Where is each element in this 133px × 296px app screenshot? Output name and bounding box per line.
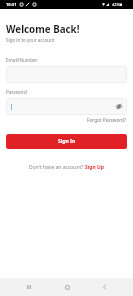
staticText: Sign in to your account <box>6 37 55 43</box>
button[interactable]: Sign Up <box>85 164 104 171</box>
staticText: Sign Up <box>85 164 104 171</box>
button[interactable] <box>6 66 127 83</box>
button[interactable]: Home <box>58 278 76 296</box>
button[interactable]: Show password <box>115 102 123 110</box>
button[interactable]: Show password <box>6 98 127 115</box>
staticText: 42% <box>112 2 121 8</box>
button[interactable]: Recents <box>20 278 38 296</box>
staticText: Welcome Back! <box>6 23 80 36</box>
staticText: Sign In <box>58 138 76 145</box>
staticText: Email/Number <box>6 57 38 63</box>
staticText: Don't have an account? <box>29 164 85 171</box>
button[interactable]: Sign In <box>6 134 127 149</box>
button[interactable]: Back <box>95 278 113 296</box>
button[interactable]: Forgot Password? <box>87 117 127 123</box>
staticText: Forgot Password? <box>87 117 127 123</box>
staticText: 10:31 <box>6 2 17 8</box>
staticText: Password <box>6 89 27 95</box>
